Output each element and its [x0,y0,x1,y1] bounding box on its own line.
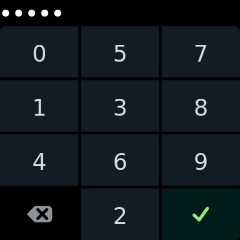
button[interactable]: 5 [81,26,159,78]
button[interactable]: 4 [0,134,78,186]
button[interactable]: 0 [0,26,78,78]
button[interactable]: Delete [0,188,78,240]
button[interactable]: 7 [162,26,240,78]
staticText: 9 [194,149,208,175]
button[interactable]: 9 [162,134,240,186]
staticText: 6 [113,149,127,175]
staticText: 4 [32,149,46,175]
button[interactable]: 8 [162,80,240,132]
staticText: 7 [194,41,208,67]
staticText: 3 [113,95,127,121]
staticText: 0 [32,41,46,67]
staticText: 2 [113,203,127,229]
staticText: 8 [194,95,208,121]
button[interactable]: 6 [81,134,159,186]
button[interactable]: 1 [0,80,78,132]
button[interactable]: Confirm [162,188,240,240]
staticText: 1 [32,95,46,121]
staticText: 5 [113,41,127,67]
button[interactable]: 3 [81,80,159,132]
button[interactable]: 2 [81,188,159,240]
